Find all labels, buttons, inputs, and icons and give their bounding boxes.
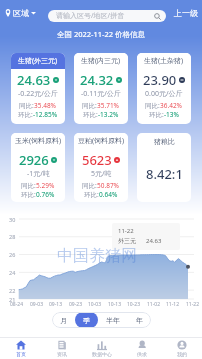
staticText: 半年 — [106, 316, 120, 325]
button[interactable]: 区域 — [3, 7, 38, 19]
staticText: 2926 — [19, 151, 49, 169]
staticText: 24.63 — [146, 237, 162, 245]
staticText: 生猪(土杂猪) — [144, 56, 184, 66]
staticText: 10-13 — [108, 301, 122, 308]
staticText: 11-02 — [147, 301, 161, 308]
staticText: 36.42% — [160, 101, 183, 110]
button[interactable]: 半年 — [98, 312, 128, 328]
staticText: -12.85% — [33, 110, 58, 119]
button[interactable]: 上一级 — [172, 7, 200, 19]
button[interactable]: 我的 — [162, 338, 202, 359]
staticText: 同比: — [82, 101, 97, 110]
staticText: 资讯 — [57, 351, 67, 357]
staticText: 环比: — [84, 190, 99, 199]
staticText: 8.42:1 — [146, 165, 183, 183]
staticText: 09-23 — [69, 301, 83, 308]
staticText: 同比: — [19, 101, 34, 110]
staticText: 23.90 — [143, 71, 177, 89]
staticText: 5623 — [82, 151, 112, 169]
staticText: 我的 — [177, 351, 187, 357]
staticText: 09-13 — [49, 301, 63, 308]
staticText: 同比: — [82, 181, 97, 190]
staticText: -13% — [164, 110, 179, 119]
staticText: 11-22 — [186, 301, 200, 308]
button[interactable]: 猪粮比 — [137, 133, 191, 202]
staticText: -0.22元/公斤 — [18, 89, 58, 99]
staticText: 豆粕(饲料原料) — [78, 136, 125, 146]
staticText: 同比: — [21, 181, 36, 190]
button[interactable]: 数据中心 — [82, 338, 122, 359]
staticText: 0.76% — [36, 190, 55, 199]
button[interactable]: 请输入区号/地区/拼音 — [48, 10, 166, 22]
button[interactable]: 生猪(土杂猪) — [137, 53, 191, 124]
staticText: 外三元 — [118, 237, 136, 245]
staticText: 5元/吨 — [91, 169, 112, 179]
staticText: 22 — [9, 287, 16, 294]
staticText: 环比: — [18, 110, 33, 119]
staticText: 26 — [9, 251, 16, 258]
staticText: -0.11元/公斤 — [81, 89, 121, 99]
staticText: 首页 — [16, 351, 26, 357]
staticText: 数据中心 — [92, 351, 112, 357]
staticText: 上一级 — [174, 8, 198, 18]
staticText: -13.2% — [98, 110, 119, 119]
staticText: 35.48% — [34, 101, 57, 110]
staticText: 区域 — [13, 8, 29, 18]
button[interactable]: 月 — [52, 312, 75, 328]
staticText: 请输入区号/地区/拼音 — [56, 11, 154, 21]
staticText: 10-23 — [127, 301, 141, 308]
staticText: 生猪(内三元) — [81, 56, 121, 66]
staticText: -1元/吨 — [27, 169, 50, 179]
button[interactable]: 生猪(内三元) — [74, 53, 128, 124]
staticText: 24.63 — [17, 71, 51, 89]
button[interactable]: 供求 — [122, 338, 162, 359]
staticText: 10-03 — [88, 301, 102, 308]
staticText: 季 — [83, 316, 90, 325]
button[interactable]: 首页 — [0, 338, 41, 359]
button[interactable]: 资讯 — [41, 338, 82, 359]
button[interactable]: 季 — [75, 312, 98, 328]
staticText: 28 — [9, 233, 16, 240]
staticText: 0.64% — [99, 190, 118, 199]
staticText: 供求 — [137, 351, 147, 357]
staticText: 猪粮比 — [154, 137, 175, 146]
staticText: 中国养猪网 — [57, 246, 137, 266]
staticText: 11-22 — [118, 227, 134, 235]
staticText: 08-24 — [10, 301, 24, 308]
staticText: 年 — [136, 316, 143, 325]
button[interactable]: 年 — [128, 312, 151, 328]
staticText: 环比: — [21, 190, 36, 199]
staticText: 30 — [9, 216, 16, 223]
button[interactable]: 豆粕(饲料原料) — [74, 133, 128, 202]
staticText: 11-12 — [166, 301, 180, 308]
staticText: 同比: — [145, 101, 160, 110]
staticText: 24.32 — [80, 71, 114, 89]
staticText: 生猪(外三元) — [18, 56, 58, 66]
staticText: 0.00元/公斤 — [145, 89, 183, 99]
staticText: 5.29% — [36, 181, 55, 190]
staticText: 月 — [60, 316, 67, 325]
staticText: 环比: — [149, 110, 164, 119]
staticText: 环比: — [83, 110, 98, 119]
staticText: 50.87% — [97, 181, 120, 190]
button[interactable]: 玉米(饲料原料) — [11, 133, 65, 202]
staticText: 24 — [9, 269, 16, 276]
staticText: 21 — [9, 296, 16, 303]
other: Search — [154, 13, 161, 20]
staticText: 玉米(饲料原料) — [15, 136, 62, 146]
staticText: 09-03 — [30, 301, 44, 308]
button[interactable]: 生猪(外三元) — [11, 53, 65, 124]
staticText: 35.71% — [97, 101, 120, 110]
staticText: 全国 2022-11-22 价格信息 — [0, 29, 202, 39]
